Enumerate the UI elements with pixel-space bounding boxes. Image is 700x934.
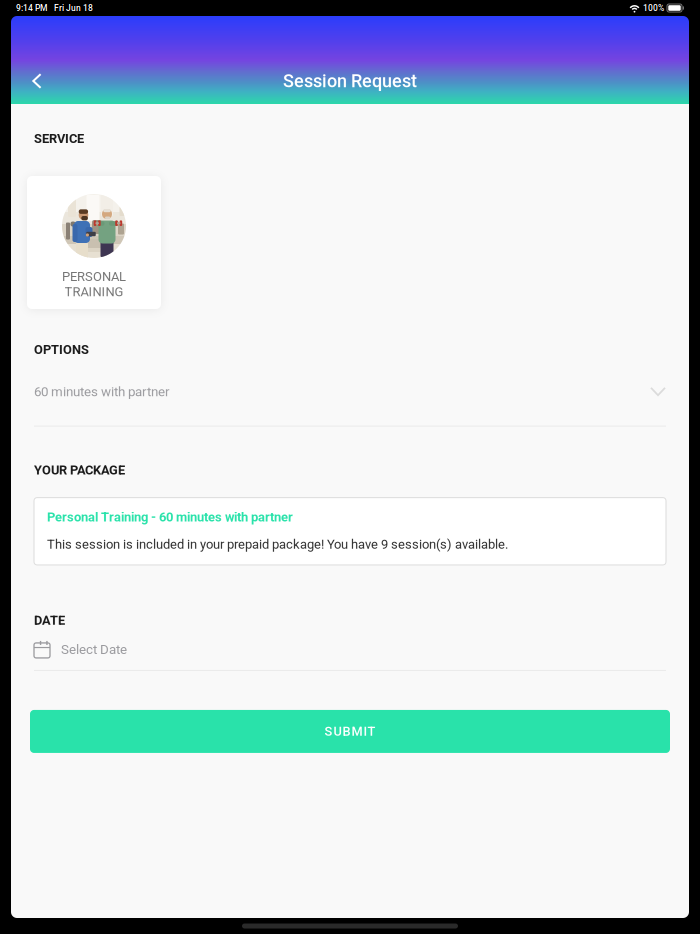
staticText: PERSONAL (62, 269, 126, 284)
staticText: DATE (34, 613, 65, 628)
staticText: OPTIONS (34, 342, 89, 357)
staticText: 100% (643, 3, 664, 13)
staticText: This session is included in your prepaid… (47, 537, 508, 552)
staticText: Session Request (283, 70, 417, 92)
staticText: YOUR PACKAGE (34, 463, 125, 478)
staticText: 60 minutes with partner (34, 384, 170, 400)
staticText: Fri Jun 18 (54, 3, 93, 13)
button[interactable]: PERSONAL (27, 176, 161, 309)
staticText: 9:14 PM (16, 3, 47, 13)
staticText: Select Date (61, 642, 127, 657)
button[interactable]: Select Date (11, 628, 689, 671)
staticText: Personal Training - 60 minutes with part… (47, 510, 293, 525)
staticText: TRAINING (64, 284, 123, 299)
staticText: SERVICE (34, 131, 84, 146)
button[interactable]: SUBMIT (30, 710, 670, 753)
button[interactable]: 60 minutes with partner (11, 357, 689, 427)
staticText: SUBMIT (324, 724, 375, 739)
button[interactable]: Back (24, 60, 50, 102)
